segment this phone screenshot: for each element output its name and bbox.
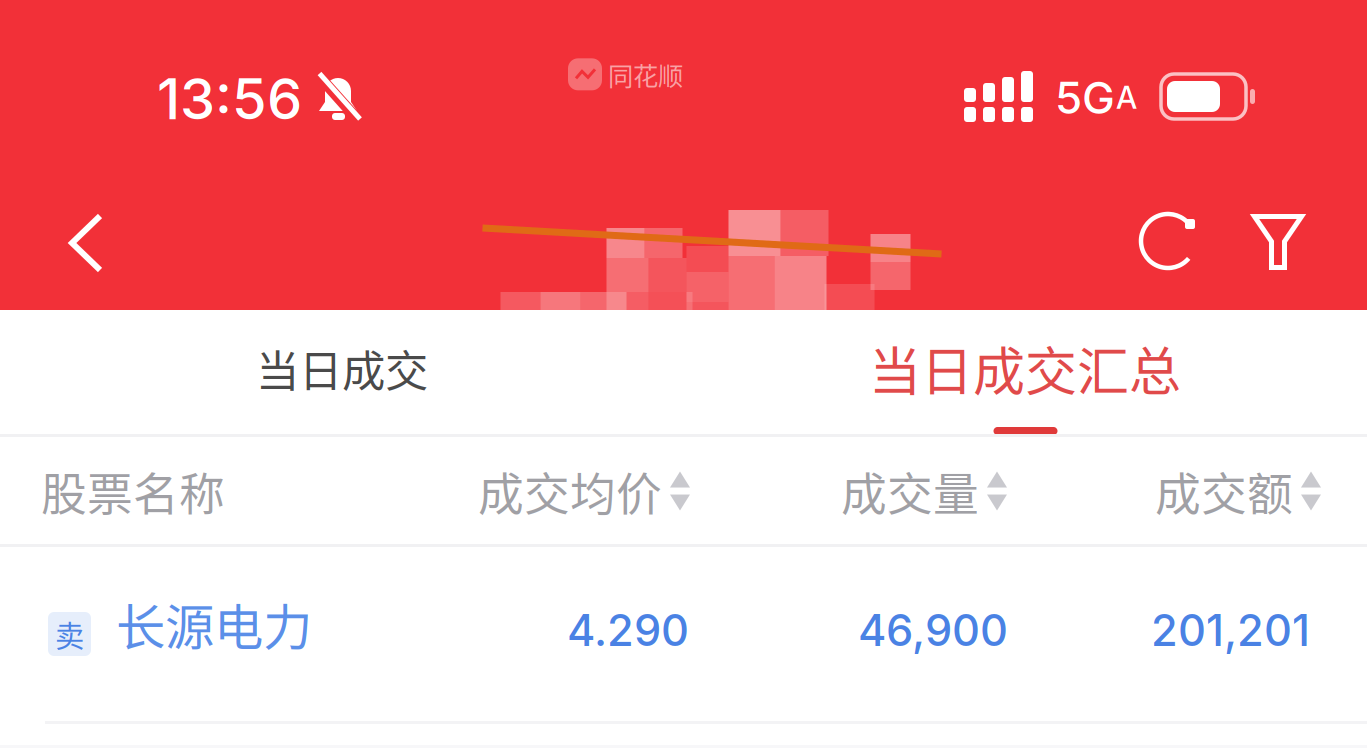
staticText: 13:56 — [157, 65, 302, 133]
staticText: 同花顺 — [608, 56, 683, 93]
staticText: 卖 — [55, 613, 84, 655]
button[interactable]: 成交均价 — [478, 463, 690, 519]
button[interactable]: 股票名称 — [41, 463, 225, 519]
button[interactable]: Back — [38, 188, 134, 298]
staticText: 成交额 — [1155, 458, 1293, 524]
staticText: A — [1116, 79, 1137, 116]
staticText: 长源电力 — [116, 588, 312, 659]
staticText: 46,900 — [858, 604, 1008, 656]
button[interactable]: 成交量 — [841, 463, 1007, 519]
staticText: 当日成交汇总 — [869, 330, 1181, 406]
staticText: 5G — [1055, 71, 1115, 124]
staticText: 成交均价 — [478, 458, 662, 524]
staticText: 4.290 — [567, 604, 689, 656]
staticText: 201,201 — [1151, 604, 1310, 656]
button[interactable]: Filter — [1228, 187, 1328, 297]
button[interactable]: Refresh — [1118, 186, 1218, 296]
staticText: 当日成交 — [256, 337, 428, 399]
staticText: 股票名称 — [41, 458, 225, 524]
button[interactable]: 卖 — [0, 547, 1367, 721]
button[interactable]: 成交额 — [1155, 463, 1321, 519]
staticText: 成交量 — [841, 458, 979, 524]
button[interactable]: 当日成交 — [0, 310, 683, 434]
button[interactable]: 当日成交汇总 — [683, 310, 1366, 434]
